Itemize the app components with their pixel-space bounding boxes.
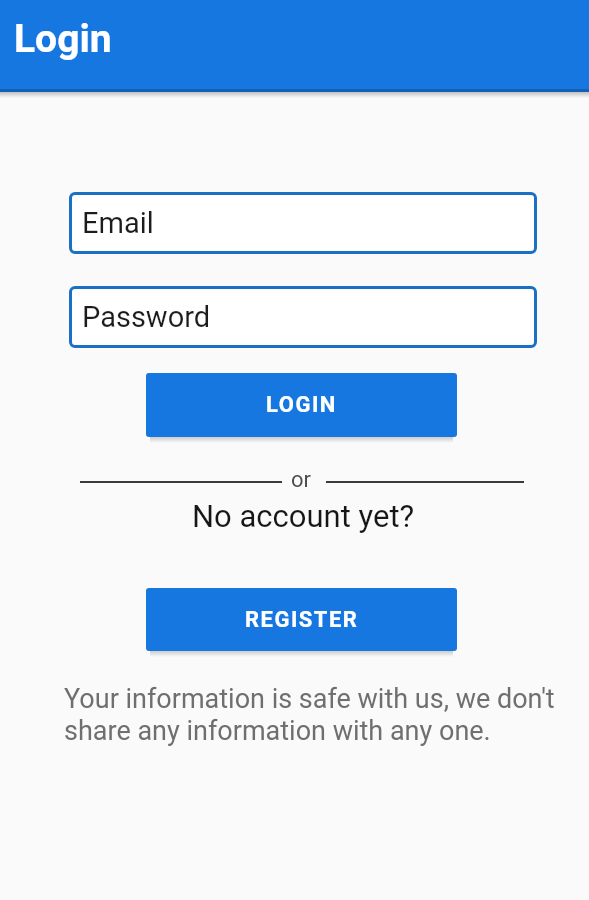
staticText: Login	[14, 16, 112, 62]
staticText: REGISTER	[245, 607, 359, 633]
staticText: Password	[82, 300, 211, 334]
button[interactable]: REGISTER	[146, 588, 457, 651]
staticText: Your information is safe with us, we don…	[64, 683, 555, 747]
staticText: Email	[82, 206, 154, 240]
staticText: LOGIN	[266, 392, 337, 418]
button[interactable]: Password	[69, 286, 537, 348]
button[interactable]: Email	[69, 192, 537, 254]
button[interactable]: LOGIN	[146, 373, 457, 437]
button[interactable]: No account yet?	[192, 498, 415, 534]
staticText: or	[291, 467, 312, 493]
